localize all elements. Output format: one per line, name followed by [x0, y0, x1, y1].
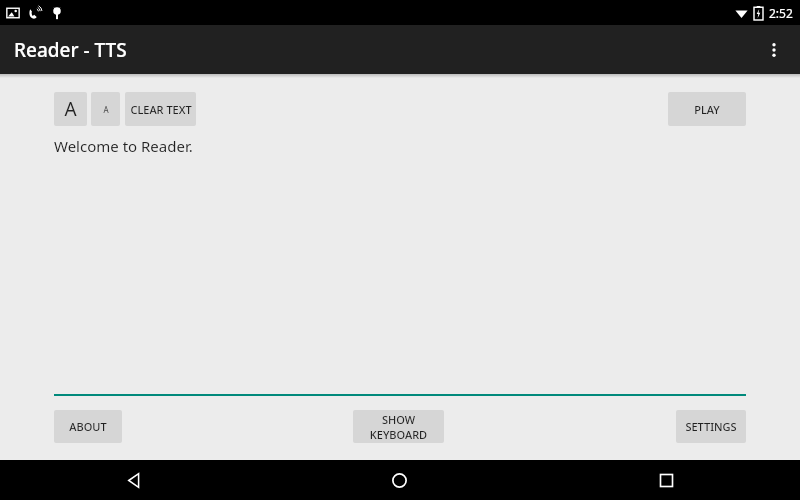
- button[interactable]: Recent apps: [533, 460, 800, 500]
- staticText: CLEAR TEXT: [130, 102, 192, 117]
- staticText: A: [103, 104, 109, 115]
- button[interactable]: PLAY: [668, 92, 746, 126]
- button[interactable]: SHOW KEYBOARD: [353, 410, 444, 443]
- staticText: Reader - TTS: [14, 37, 127, 63]
- button[interactable]: Back: [0, 460, 266, 500]
- button[interactable]: CLEAR TEXT: [125, 92, 196, 126]
- staticText: 2:52: [769, 5, 793, 21]
- button[interactable]: SETTINGS: [676, 410, 746, 443]
- button[interactable]: Home: [266, 460, 533, 500]
- staticText: Welcome to Reader.: [54, 136, 193, 156]
- staticText: SHOW KEYBOARD: [353, 412, 444, 442]
- button[interactable]: More options: [754, 30, 794, 70]
- staticText: ABOUT: [69, 419, 107, 434]
- staticText: PLAY: [694, 102, 720, 117]
- button[interactable]: ABOUT: [54, 410, 122, 443]
- staticText: SETTINGS: [685, 419, 737, 434]
- staticText: A: [64, 96, 77, 122]
- button[interactable]: Increase text size: [54, 92, 87, 126]
- button[interactable]: Decrease text size: [91, 92, 120, 126]
